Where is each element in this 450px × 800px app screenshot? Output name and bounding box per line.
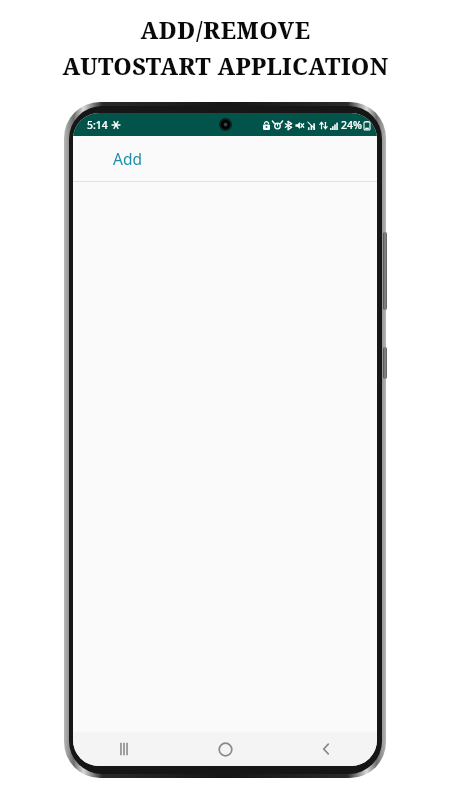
- staticText: 24%: [341, 118, 362, 132]
- button[interactable]: Volume buttons: [383, 232, 387, 310]
- staticText: 5:14: [87, 118, 108, 132]
- button[interactable]: Add: [109, 144, 146, 173]
- staticText: ADD/REMOVE: [140, 14, 311, 45]
- button[interactable]: Back: [276, 732, 377, 766]
- button[interactable]: Recent apps: [73, 732, 175, 766]
- staticText: Add: [113, 148, 142, 169]
- staticText: AUTOSTART APPLICATION: [62, 50, 389, 81]
- button[interactable]: Power button: [383, 347, 387, 379]
- button[interactable]: Home: [175, 732, 276, 766]
